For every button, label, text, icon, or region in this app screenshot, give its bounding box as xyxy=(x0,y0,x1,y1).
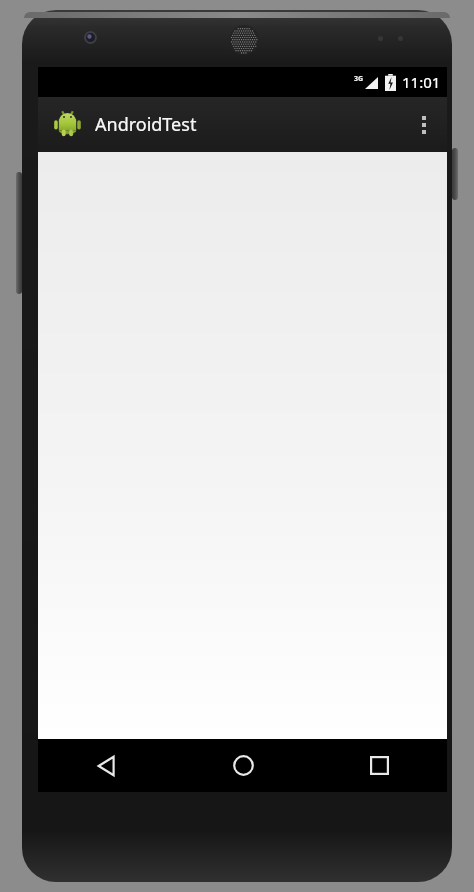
staticText: AndroidTest xyxy=(95,112,197,137)
button[interactable]: Recent apps xyxy=(311,739,447,792)
staticText: 11:01 xyxy=(402,72,441,92)
button[interactable]: Home xyxy=(175,739,311,792)
staticText: 3G xyxy=(354,74,364,84)
button[interactable]: Back xyxy=(38,739,175,792)
button[interactable]: More options xyxy=(401,97,447,152)
